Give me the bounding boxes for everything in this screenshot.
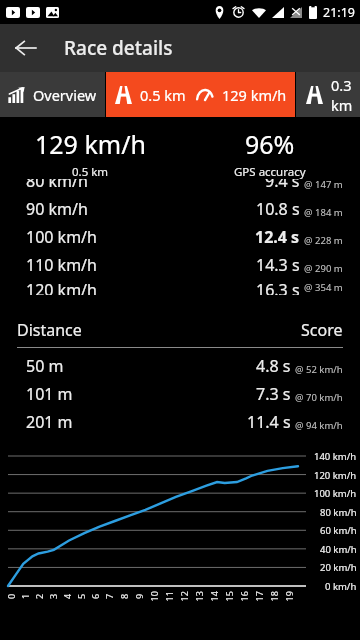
staticText: @ 228 m xyxy=(304,234,343,247)
staticText: @ 184 m xyxy=(304,206,343,219)
staticText: 11.4 s xyxy=(247,411,291,433)
button[interactable]: 100 km/h xyxy=(0,223,360,251)
staticText: 14 xyxy=(207,590,219,601)
staticText: 9.4 s xyxy=(265,179,300,192)
button[interactable]: 201 m xyxy=(0,408,360,436)
staticText: 96% xyxy=(245,127,295,161)
staticText: 10 xyxy=(147,590,159,601)
staticText: 110 km/h xyxy=(26,254,97,276)
staticText: Overview xyxy=(33,85,97,105)
staticText: 16 xyxy=(237,590,249,601)
staticText: 80 km/h xyxy=(320,506,357,519)
staticText: 100 km/h xyxy=(26,226,97,248)
staticText: 17 xyxy=(252,590,264,601)
staticText: 5 xyxy=(75,593,87,599)
staticText: 15 xyxy=(222,590,234,601)
staticText: @ 70 km/h xyxy=(295,391,343,404)
staticText: 0.3 km xyxy=(331,75,360,115)
button[interactable]: 0.3 km xyxy=(296,72,360,117)
staticText: 4 xyxy=(61,593,73,599)
staticText: 120 km/h xyxy=(26,279,97,295)
staticText: @ 52 km/h xyxy=(295,363,343,376)
button[interactable]: Back xyxy=(4,26,48,70)
staticText: @ 147 m xyxy=(304,179,343,191)
staticText: 80 km/h xyxy=(26,179,88,192)
staticText: @ 354 m xyxy=(304,281,343,294)
staticText: 3 xyxy=(47,593,59,599)
button[interactable]: 50 m xyxy=(0,352,360,380)
staticText: 0 km/h xyxy=(325,580,357,593)
staticText: 7 xyxy=(103,593,115,599)
staticText: 100 km/h xyxy=(314,487,357,500)
staticText: 0.5 km xyxy=(140,85,186,105)
staticText: 140 km/h xyxy=(314,450,357,463)
staticText: 90 km/h xyxy=(26,198,88,220)
staticText: Race details xyxy=(64,35,173,61)
staticText: 129 km/h xyxy=(35,127,146,161)
staticText: 10.8 s xyxy=(256,198,300,220)
button[interactable]: 110 km/h xyxy=(0,251,360,279)
staticText: 7.3 s xyxy=(256,383,291,405)
staticText: 50 m xyxy=(26,355,64,377)
button[interactable]: 101 m xyxy=(0,380,360,408)
staticText: 6 xyxy=(89,593,101,599)
staticText: Distance xyxy=(17,319,82,341)
button[interactable]: Overview xyxy=(0,72,105,117)
staticText: 21:19 xyxy=(323,4,355,21)
staticText: 9 xyxy=(133,593,145,599)
staticText: 12.4 s xyxy=(255,226,300,248)
staticText: 18 xyxy=(267,590,279,601)
staticText: 12 xyxy=(177,590,189,601)
staticText: 101 m xyxy=(26,383,73,405)
staticText: 0 xyxy=(5,593,17,599)
staticText: Score xyxy=(301,319,343,341)
staticText: 2 xyxy=(33,593,45,599)
staticText: @ 94 km/h xyxy=(295,419,343,432)
staticText: 16.3 s xyxy=(256,279,300,295)
staticText: GPS accuracy xyxy=(234,164,306,179)
staticText: 19 xyxy=(282,590,294,601)
staticText: 8 xyxy=(118,593,130,599)
staticText: 13 xyxy=(192,590,204,601)
staticText: 40 km/h xyxy=(320,543,357,556)
staticText: 14.3 s xyxy=(256,254,300,276)
staticText: 11 xyxy=(162,590,174,601)
button[interactable]: 80 km/h xyxy=(0,179,360,195)
staticText: 120 km/h xyxy=(314,469,357,482)
staticText: 20 km/h xyxy=(320,561,357,574)
staticText: 129 km/h xyxy=(222,85,287,105)
staticText: 60 km/h xyxy=(320,524,357,537)
button[interactable]: 90 km/h xyxy=(0,195,360,223)
staticText: 4.8 s xyxy=(256,355,291,377)
staticText: @ 290 m xyxy=(304,262,343,275)
staticText: 1 xyxy=(19,593,31,599)
button[interactable]: 0.5 km xyxy=(106,72,295,117)
button[interactable]: 120 km/h xyxy=(0,279,360,295)
staticText: 0.5 km xyxy=(72,164,109,179)
staticText: 201 m xyxy=(26,411,73,433)
